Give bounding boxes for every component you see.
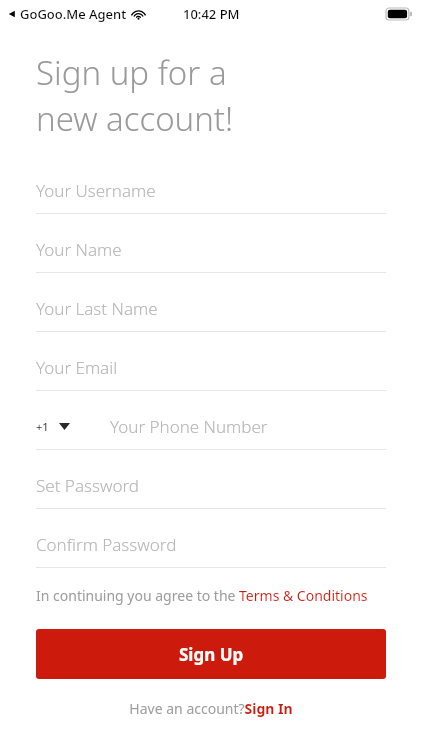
staticText: Have an account?Sign In	[129, 699, 293, 718]
button[interactable]: Your Name	[36, 226, 386, 273]
button[interactable]: Select country code	[36, 419, 76, 434]
staticText: Your Last Name	[36, 297, 158, 320]
staticText: Set Password	[36, 474, 139, 497]
button[interactable]: Your Username	[36, 167, 386, 214]
staticText: Your Name	[36, 238, 122, 261]
button[interactable]: Confirm Password	[36, 521, 386, 568]
staticText: Sign Up	[179, 643, 244, 666]
button[interactable]: In continuing you agree to the Terms & C…	[36, 586, 386, 605]
staticText: Your Username	[36, 179, 156, 202]
staticText: 10:42 PM	[183, 5, 240, 23]
button[interactable]: Your Phone Number	[76, 403, 386, 449]
button[interactable]: Have an account?Sign In	[36, 699, 386, 718]
staticText: Your Email	[36, 356, 118, 379]
button[interactable]: Your Email	[36, 344, 386, 391]
button[interactable]: Sign Up	[36, 629, 386, 679]
staticText: Your Phone Number	[110, 415, 268, 438]
staticText: +1	[36, 419, 49, 434]
staticText: Confirm Password	[36, 533, 177, 556]
button[interactable]: Your Last Name	[36, 285, 386, 332]
staticText: Sign up for a new account!	[36, 50, 234, 141]
staticText: GoGoo.Me Agent	[20, 5, 127, 23]
button[interactable]: Set Password	[36, 462, 386, 509]
